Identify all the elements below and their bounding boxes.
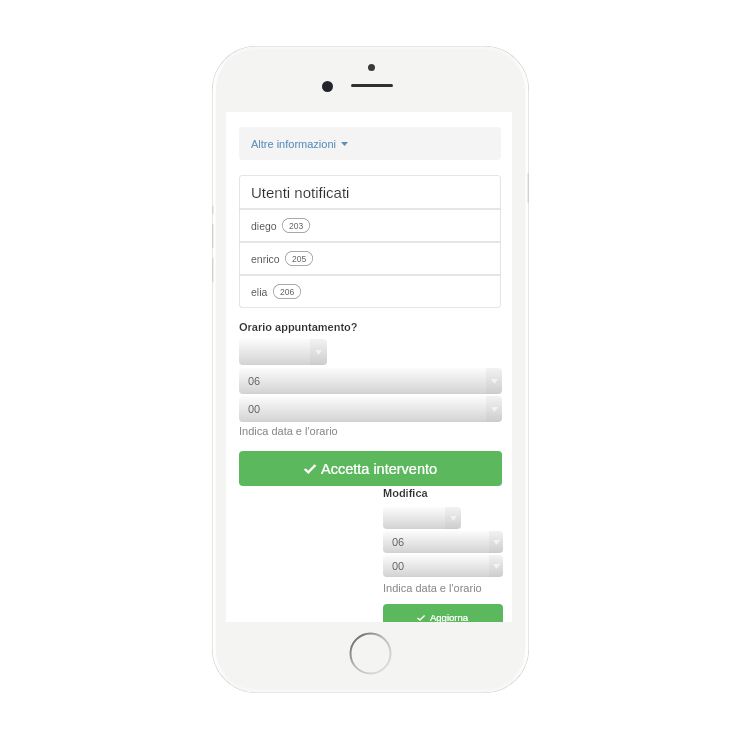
button[interactable]: 06 — [383, 531, 503, 553]
staticText: 206 — [280, 287, 295, 296]
staticText: Modifica — [383, 487, 428, 499]
button[interactable]: elia — [239, 275, 501, 308]
button[interactable]: 00 — [383, 555, 503, 577]
staticText: Utenti notificati — [251, 184, 350, 201]
staticText: Aggiorna — [430, 612, 469, 622]
staticText: elia — [251, 286, 268, 298]
button[interactable]: Accetta intervento — [239, 451, 502, 486]
button[interactable]: Altre informazioni — [239, 127, 501, 160]
staticText: diego — [251, 220, 277, 232]
staticText: Altre informazioni — [251, 138, 336, 150]
button[interactable]: Select date — [239, 339, 327, 365]
button[interactable]: diego — [239, 209, 501, 242]
button[interactable]: enrico — [239, 242, 501, 275]
staticText: 00 — [248, 403, 261, 415]
button[interactable]: 06 — [239, 368, 502, 394]
staticText: 06 — [248, 375, 261, 387]
staticText: 205 — [292, 254, 307, 263]
staticText: Indica data e l'orario — [239, 425, 338, 437]
staticText: Indica data e l'orario — [383, 582, 482, 594]
staticText: Accetta intervento — [321, 461, 438, 477]
staticText: 06 — [392, 536, 405, 548]
staticText: Orario appuntamento? — [239, 321, 358, 333]
staticText: 203 — [289, 221, 304, 230]
button[interactable]: 00 — [239, 396, 502, 422]
staticText: enrico — [251, 253, 280, 265]
staticText: 00 — [392, 560, 405, 572]
button[interactable]: Select date — [383, 507, 461, 529]
other: Home — [349, 632, 392, 675]
button[interactable]: Aggiorna — [383, 604, 503, 622]
